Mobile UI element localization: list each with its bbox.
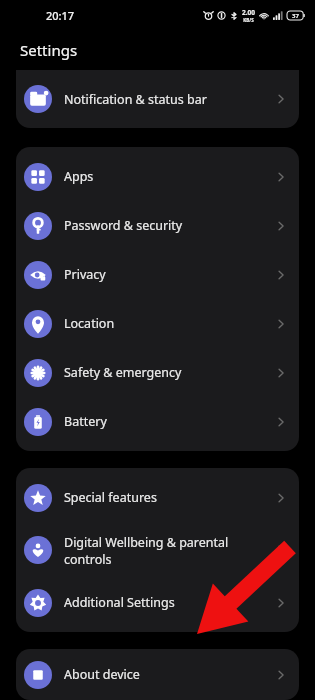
staticText: Settings bbox=[20, 40, 78, 60]
staticText: About device bbox=[64, 666, 267, 683]
staticText: Notification & status bar bbox=[64, 91, 267, 108]
button[interactable]: Privacy bbox=[16, 250, 299, 299]
staticText: 20:17 bbox=[46, 8, 75, 23]
staticText: Digital Wellbeing & parental controls bbox=[64, 534, 267, 567]
button[interactable]: Safety & emergency bbox=[16, 348, 299, 397]
button[interactable]: Battery bbox=[16, 397, 299, 446]
other: Annotation arrow pointing to Additional … bbox=[0, 0, 315, 700]
staticText: Location bbox=[64, 315, 267, 332]
button[interactable]: Digital Wellbeing & parental controls bbox=[16, 522, 299, 578]
staticText: Privacy bbox=[64, 266, 267, 283]
staticText: 37 bbox=[292, 12, 299, 20]
button[interactable]: Location bbox=[16, 299, 299, 348]
staticText: Additional Settings bbox=[64, 594, 267, 611]
staticText: 2.00 bbox=[242, 8, 255, 17]
button[interactable]: About device bbox=[16, 654, 299, 695]
staticText: Special features bbox=[64, 489, 267, 506]
staticText: KB/S bbox=[243, 17, 254, 23]
staticText: Password & security bbox=[64, 217, 267, 234]
button[interactable]: Password & security bbox=[16, 201, 299, 250]
staticText: Apps bbox=[64, 168, 267, 185]
button[interactable]: Notification & status bar bbox=[16, 75, 299, 123]
button[interactable]: Special features bbox=[16, 473, 299, 522]
staticText: Safety & emergency bbox=[64, 364, 267, 381]
button[interactable]: Apps bbox=[16, 152, 299, 201]
button[interactable]: Additional Settings bbox=[16, 578, 299, 627]
staticText: Battery bbox=[64, 413, 267, 430]
